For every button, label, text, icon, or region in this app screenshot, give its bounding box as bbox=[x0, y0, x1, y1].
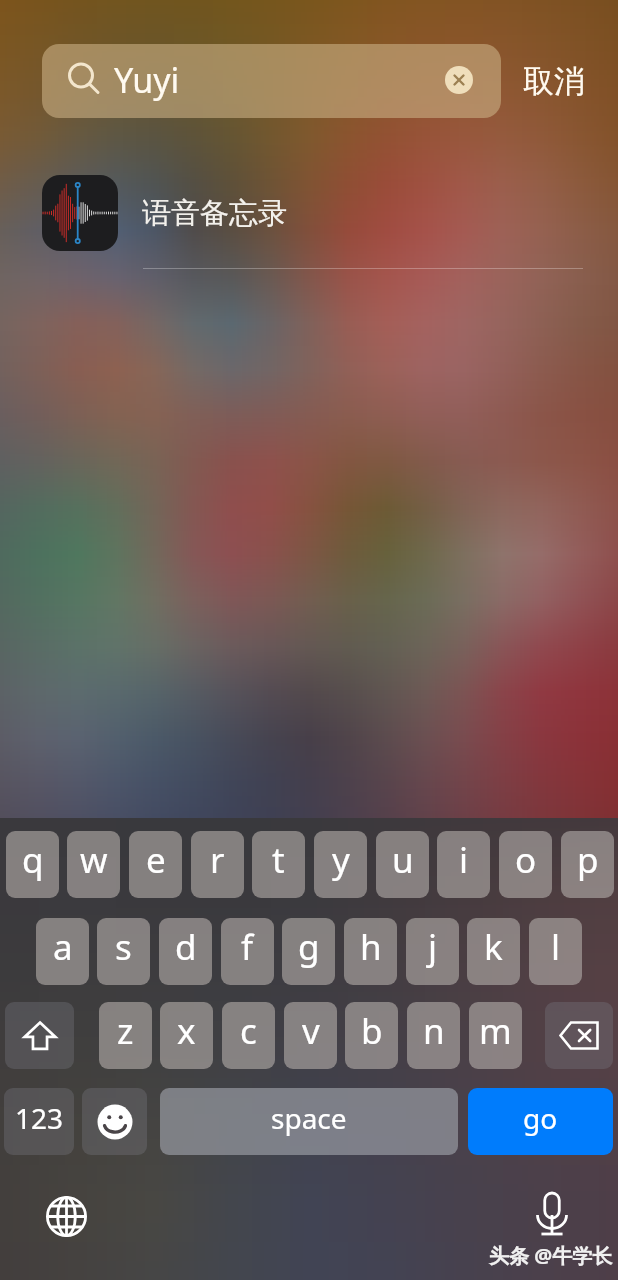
button[interactable]: w bbox=[67, 831, 120, 898]
button[interactable]: e bbox=[129, 831, 182, 898]
button[interactable]: m bbox=[469, 1002, 522, 1069]
button[interactable]: h bbox=[344, 918, 397, 985]
staticText: z bbox=[117, 1007, 134, 1055]
staticText: a bbox=[53, 923, 73, 971]
staticText: l bbox=[551, 923, 561, 971]
button[interactable]: n bbox=[407, 1002, 460, 1069]
staticText: q bbox=[22, 836, 44, 884]
button[interactable]: t bbox=[252, 831, 305, 898]
button[interactable]: z bbox=[99, 1002, 152, 1069]
button[interactable]: i bbox=[437, 831, 490, 898]
staticText: s bbox=[115, 923, 132, 971]
staticText: 123 bbox=[15, 1099, 64, 1137]
button[interactable] bbox=[42, 44, 501, 118]
button[interactable]: space bbox=[160, 1088, 458, 1155]
staticText: w bbox=[80, 836, 108, 884]
staticText: m bbox=[479, 1007, 512, 1055]
button[interactable]: f bbox=[221, 918, 274, 985]
staticText: d bbox=[175, 923, 197, 971]
button[interactable]: u bbox=[376, 831, 429, 898]
button[interactable]: s bbox=[97, 918, 150, 985]
staticText: space bbox=[271, 1099, 347, 1137]
button[interactable]: j bbox=[406, 918, 459, 985]
button[interactable]: r bbox=[191, 831, 244, 898]
staticText: y bbox=[332, 836, 350, 884]
staticText: b bbox=[361, 1007, 383, 1055]
staticText: o bbox=[515, 836, 537, 884]
button[interactable]: b bbox=[345, 1002, 398, 1069]
staticText: 取消 bbox=[523, 62, 585, 101]
button[interactable]: Change keyboard bbox=[44, 1194, 88, 1238]
staticText: k bbox=[484, 923, 503, 971]
button[interactable]: Shift bbox=[5, 1002, 74, 1069]
button[interactable]: d bbox=[159, 918, 212, 985]
button[interactable]: y bbox=[314, 831, 367, 898]
staticText: p bbox=[577, 836, 599, 884]
staticText: 语音备忘录 bbox=[142, 195, 287, 232]
staticText: n bbox=[423, 1007, 445, 1055]
button[interactable]: k bbox=[467, 918, 520, 985]
staticText: 头条 @牛学长 bbox=[489, 1242, 613, 1269]
button[interactable]: Backspace bbox=[545, 1002, 613, 1069]
staticText: Yuyi bbox=[114, 57, 180, 103]
staticText: c bbox=[240, 1007, 257, 1055]
staticText: h bbox=[360, 923, 382, 971]
staticText: x bbox=[177, 1007, 196, 1055]
button[interactable]: g bbox=[282, 918, 335, 985]
button[interactable]: v bbox=[284, 1002, 337, 1069]
staticText: r bbox=[210, 836, 225, 884]
staticText: u bbox=[392, 836, 414, 884]
button[interactable]: q bbox=[6, 831, 59, 898]
button[interactable]: o bbox=[499, 831, 552, 898]
button[interactable]: x bbox=[160, 1002, 213, 1069]
button[interactable]: go bbox=[468, 1088, 613, 1155]
staticText: i bbox=[459, 836, 469, 884]
button[interactable]: l bbox=[529, 918, 582, 985]
button[interactable]: a bbox=[36, 918, 89, 985]
staticText: f bbox=[241, 923, 254, 971]
staticText: g bbox=[298, 923, 320, 971]
button[interactable]: 取消 bbox=[519, 58, 589, 104]
button[interactable]: Voice Memos bbox=[42, 175, 118, 251]
staticText: go bbox=[523, 1099, 558, 1137]
button[interactable]: c bbox=[222, 1002, 275, 1069]
button[interactable]: 123 bbox=[4, 1088, 74, 1155]
staticText: t bbox=[272, 836, 285, 884]
button[interactable]: p bbox=[561, 831, 614, 898]
button[interactable]: Dictation bbox=[530, 1190, 574, 1240]
button[interactable]: Emoji bbox=[82, 1088, 147, 1155]
staticText: e bbox=[146, 836, 166, 884]
button[interactable]: 语音备忘录 bbox=[130, 175, 600, 251]
staticText: v bbox=[302, 1007, 320, 1055]
button[interactable]: Clear text bbox=[445, 66, 473, 94]
staticText: j bbox=[428, 923, 438, 971]
